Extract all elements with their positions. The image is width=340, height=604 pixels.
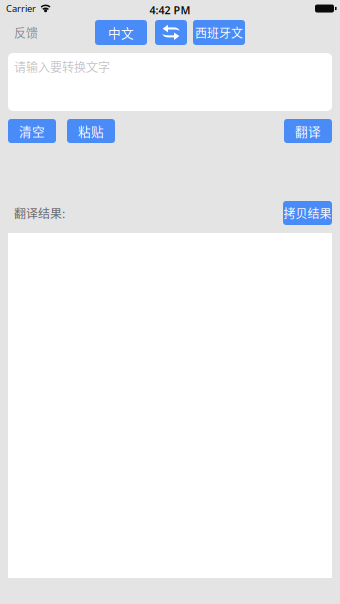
staticText: 中文 [108,23,134,42]
button[interactable]: 翻译 [284,119,332,143]
staticText: 翻译结果: [14,204,65,222]
staticText: 4:42 PM [149,3,190,17]
button[interactable]: 清空 [8,119,56,143]
staticText: 西班牙文 [195,24,243,41]
staticText: 粘贴 [78,122,104,140]
staticText: Carrier [6,2,36,15]
staticText: 拷贝结果 [283,204,331,222]
button[interactable]: 西班牙文 [193,20,245,45]
staticText: 请输入要转换文字 [14,58,110,75]
staticText: 清空 [19,122,45,140]
staticText: 翻译 [295,122,321,140]
staticText: 反馈 [14,24,38,41]
button[interactable]: Swap languages [155,20,187,45]
button[interactable]: 拷贝结果 [283,201,332,225]
button[interactable]: 粘贴 [67,119,115,143]
button[interactable]: 反馈 [14,20,60,45]
button[interactable]: 中文 [95,20,147,45]
